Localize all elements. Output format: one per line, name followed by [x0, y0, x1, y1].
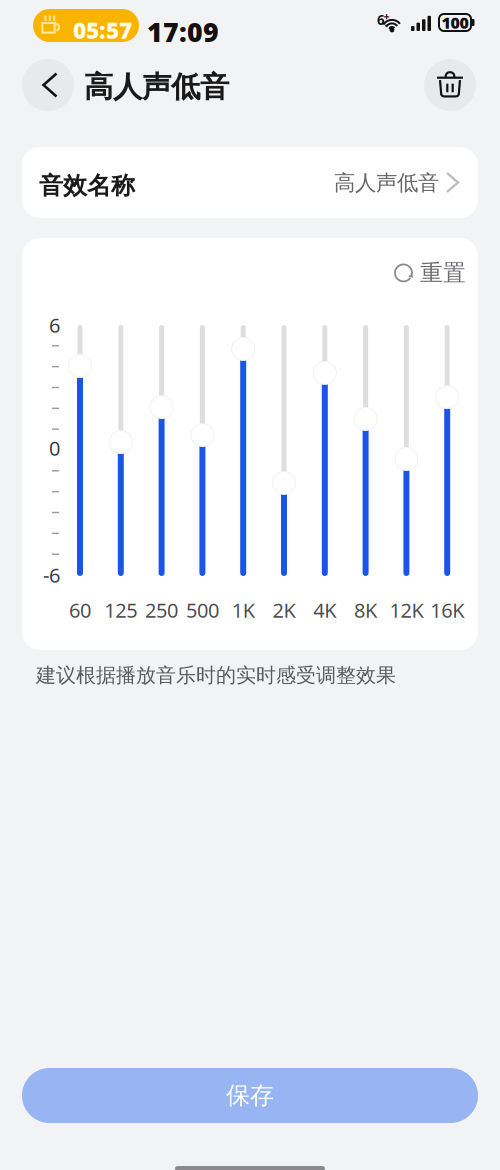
staticText: 1K: [232, 597, 255, 623]
staticText: -6: [43, 562, 60, 588]
staticText: 125: [104, 597, 137, 623]
staticText: 音效名称: [39, 171, 135, 200]
button[interactable]: Delete: [424, 59, 476, 111]
staticText: 16K: [430, 597, 464, 623]
staticText: 4K: [313, 597, 336, 623]
staticText: 高人声低音: [84, 69, 229, 105]
staticText: +: [383, 9, 389, 23]
button[interactable]: 保存: [22, 1068, 478, 1123]
staticText: 12K: [389, 597, 423, 623]
button[interactable]: 音效名称: [22, 147, 478, 218]
staticText: 17:09: [147, 14, 219, 49]
button[interactable]: Back: [22, 59, 74, 111]
staticText: 8K: [354, 597, 377, 623]
staticText: 6: [377, 11, 385, 29]
staticText: 60: [69, 597, 91, 623]
staticText: 高人声低音: [334, 170, 439, 196]
staticText: 500: [186, 597, 219, 623]
button[interactable]: 重置: [388, 255, 472, 291]
staticText: 2K: [272, 597, 295, 623]
staticText: 05:57: [73, 15, 132, 45]
staticText: 重置: [420, 259, 466, 287]
staticText: 6: [49, 312, 60, 338]
staticText: 建议根据播放音乐时的实时感受调整效果: [36, 663, 396, 688]
staticText: 100: [441, 12, 468, 33]
staticText: 保存: [226, 1081, 274, 1110]
staticText: 0: [49, 435, 60, 461]
staticText: 250: [145, 597, 178, 623]
